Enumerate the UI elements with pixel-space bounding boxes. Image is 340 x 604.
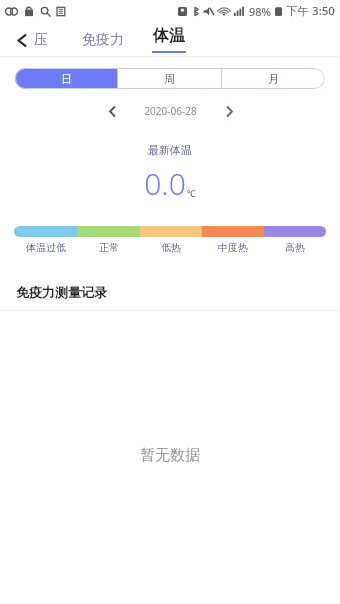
staticText: 最新体温: [148, 143, 192, 157]
staticText: 中度热: [218, 241, 248, 254]
staticText: 压: [34, 31, 48, 49]
staticText: ℃: [187, 187, 196, 199]
staticText: 体温: [153, 26, 185, 46]
staticText: 免疫力测量记录: [16, 284, 107, 300]
staticText: 月: [268, 72, 279, 86]
button[interactable]: 压: [30, 27, 52, 53]
staticText: 2020-06-28: [144, 104, 197, 118]
staticText: 98%: [249, 4, 271, 19]
button[interactable]: Previous day: [98, 97, 126, 125]
button[interactable]: 日: [15, 68, 117, 89]
staticText: 周: [164, 72, 175, 86]
button[interactable]: Back: [8, 26, 36, 54]
staticText: 免疫力: [82, 31, 124, 49]
staticText: 低热: [161, 241, 181, 254]
button[interactable]: 周: [118, 68, 221, 89]
staticText: 0.0: [144, 163, 186, 204]
staticText: 日: [61, 72, 72, 86]
button[interactable]: 免疫力: [76, 27, 130, 53]
button[interactable]: Next day: [215, 97, 243, 125]
staticText: 高热: [285, 241, 305, 254]
staticText: 体温过低: [26, 241, 66, 254]
button[interactable]: 体温: [152, 26, 186, 53]
staticText: 正常: [99, 241, 119, 254]
button[interactable]: 月: [222, 68, 325, 89]
staticText: 暂无数据: [140, 446, 200, 465]
staticText: 下午 3:50: [286, 3, 335, 19]
